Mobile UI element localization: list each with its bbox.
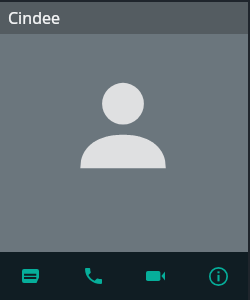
- button[interactable]: Details: [187, 252, 250, 300]
- button[interactable]: Call: [62, 252, 124, 300]
- button[interactable]: Message: [0, 252, 62, 300]
- staticText: Cindee: [8, 7, 61, 29]
- button[interactable]: Cindee: [0, 2, 250, 34]
- button[interactable]: Video call: [124, 252, 187, 300]
